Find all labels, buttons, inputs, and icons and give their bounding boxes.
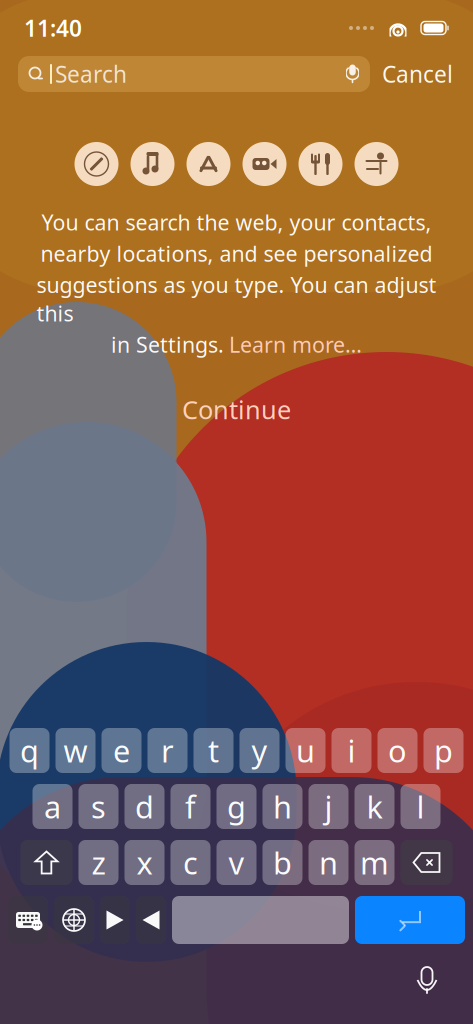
button[interactable]: u	[285, 728, 325, 773]
button[interactable]: z	[78, 840, 118, 885]
staticText: z	[91, 842, 105, 883]
button[interactable]: Restaurants	[298, 142, 342, 186]
button[interactable]: i	[331, 728, 371, 773]
button[interactable]: k	[354, 784, 394, 829]
button[interactable]: Video	[242, 142, 286, 186]
staticText: b	[273, 842, 292, 883]
button[interactable]: Learn more…	[229, 330, 362, 359]
staticText: Continue	[182, 393, 291, 426]
staticText: f	[185, 786, 196, 827]
button[interactable]: f	[170, 784, 210, 829]
staticText: j	[324, 786, 332, 827]
staticText: k	[366, 786, 382, 827]
button[interactable]: p	[423, 728, 463, 773]
staticText: q	[20, 730, 39, 771]
button[interactable]: v	[216, 840, 256, 885]
button[interactable]: e	[101, 728, 141, 773]
staticText: nearby locations, and see personalized	[40, 239, 432, 268]
button[interactable]: s	[78, 784, 118, 829]
button[interactable]: Move Right	[136, 896, 166, 944]
staticText: s	[91, 786, 106, 827]
staticText: v	[228, 842, 244, 883]
button[interactable]: t	[193, 728, 233, 773]
staticText: x	[136, 842, 152, 883]
staticText: e	[113, 730, 130, 771]
button[interactable]: h	[262, 784, 302, 829]
button[interactable]: Music	[130, 142, 174, 186]
button[interactable]: Search	[18, 56, 370, 92]
button[interactable]: y	[239, 728, 279, 773]
staticText: in Settings.	[111, 330, 224, 359]
staticText: a	[44, 786, 61, 827]
staticText: Search	[55, 59, 127, 89]
staticText: t	[208, 730, 219, 771]
button[interactable]: g	[216, 784, 256, 829]
staticText: h	[273, 786, 292, 827]
staticText: i	[347, 730, 355, 771]
staticText: You can search the web, your contacts,	[41, 208, 431, 236]
button[interactable]: Maps	[354, 142, 398, 186]
button[interactable]: a	[32, 784, 72, 829]
staticText: n	[319, 842, 338, 883]
button[interactable]: Hide Keyboard	[8, 896, 48, 944]
staticText: o	[388, 730, 407, 771]
staticText: d	[135, 786, 154, 827]
button[interactable]: b	[262, 840, 302, 885]
button[interactable]: Apps	[186, 142, 230, 186]
button[interactable]: n	[308, 840, 348, 885]
button[interactable]: Delete	[400, 840, 452, 885]
button[interactable]: Space	[172, 896, 349, 944]
staticText: 11:40	[24, 13, 82, 43]
staticText: y	[251, 730, 267, 771]
button[interactable]: Shift	[20, 840, 72, 885]
staticText: c	[183, 842, 198, 883]
staticText: g	[227, 786, 246, 827]
staticText: w	[63, 730, 87, 771]
button[interactable]: Move Left	[100, 896, 130, 944]
button[interactable]: o	[377, 728, 417, 773]
button[interactable]: Continue	[164, 387, 309, 432]
button[interactable]: l	[400, 784, 440, 829]
button[interactable]: r	[147, 728, 187, 773]
staticText: suggestions as you type. You can adjust …	[36, 271, 436, 327]
button[interactable]: Web	[74, 142, 118, 186]
button[interactable]: Cancel	[380, 56, 455, 92]
staticText: Cancel	[382, 59, 453, 89]
button[interactable]: d	[124, 784, 164, 829]
staticText: p	[434, 730, 453, 771]
button[interactable]: x	[124, 840, 164, 885]
staticText: u	[296, 730, 315, 771]
button[interactable]: q	[9, 728, 49, 773]
staticText: l	[416, 786, 424, 827]
button[interactable]: m	[354, 840, 394, 885]
button[interactable]: Next Keyboard	[54, 896, 94, 944]
staticText: m	[360, 842, 389, 883]
button[interactable]: Dictate	[415, 964, 449, 996]
button[interactable]: c	[170, 840, 210, 885]
button[interactable]: j	[308, 784, 348, 829]
button[interactable]: Return	[355, 896, 465, 944]
staticText: r	[161, 730, 174, 771]
button[interactable]: w	[55, 728, 95, 773]
staticText: Learn more…	[229, 330, 362, 359]
